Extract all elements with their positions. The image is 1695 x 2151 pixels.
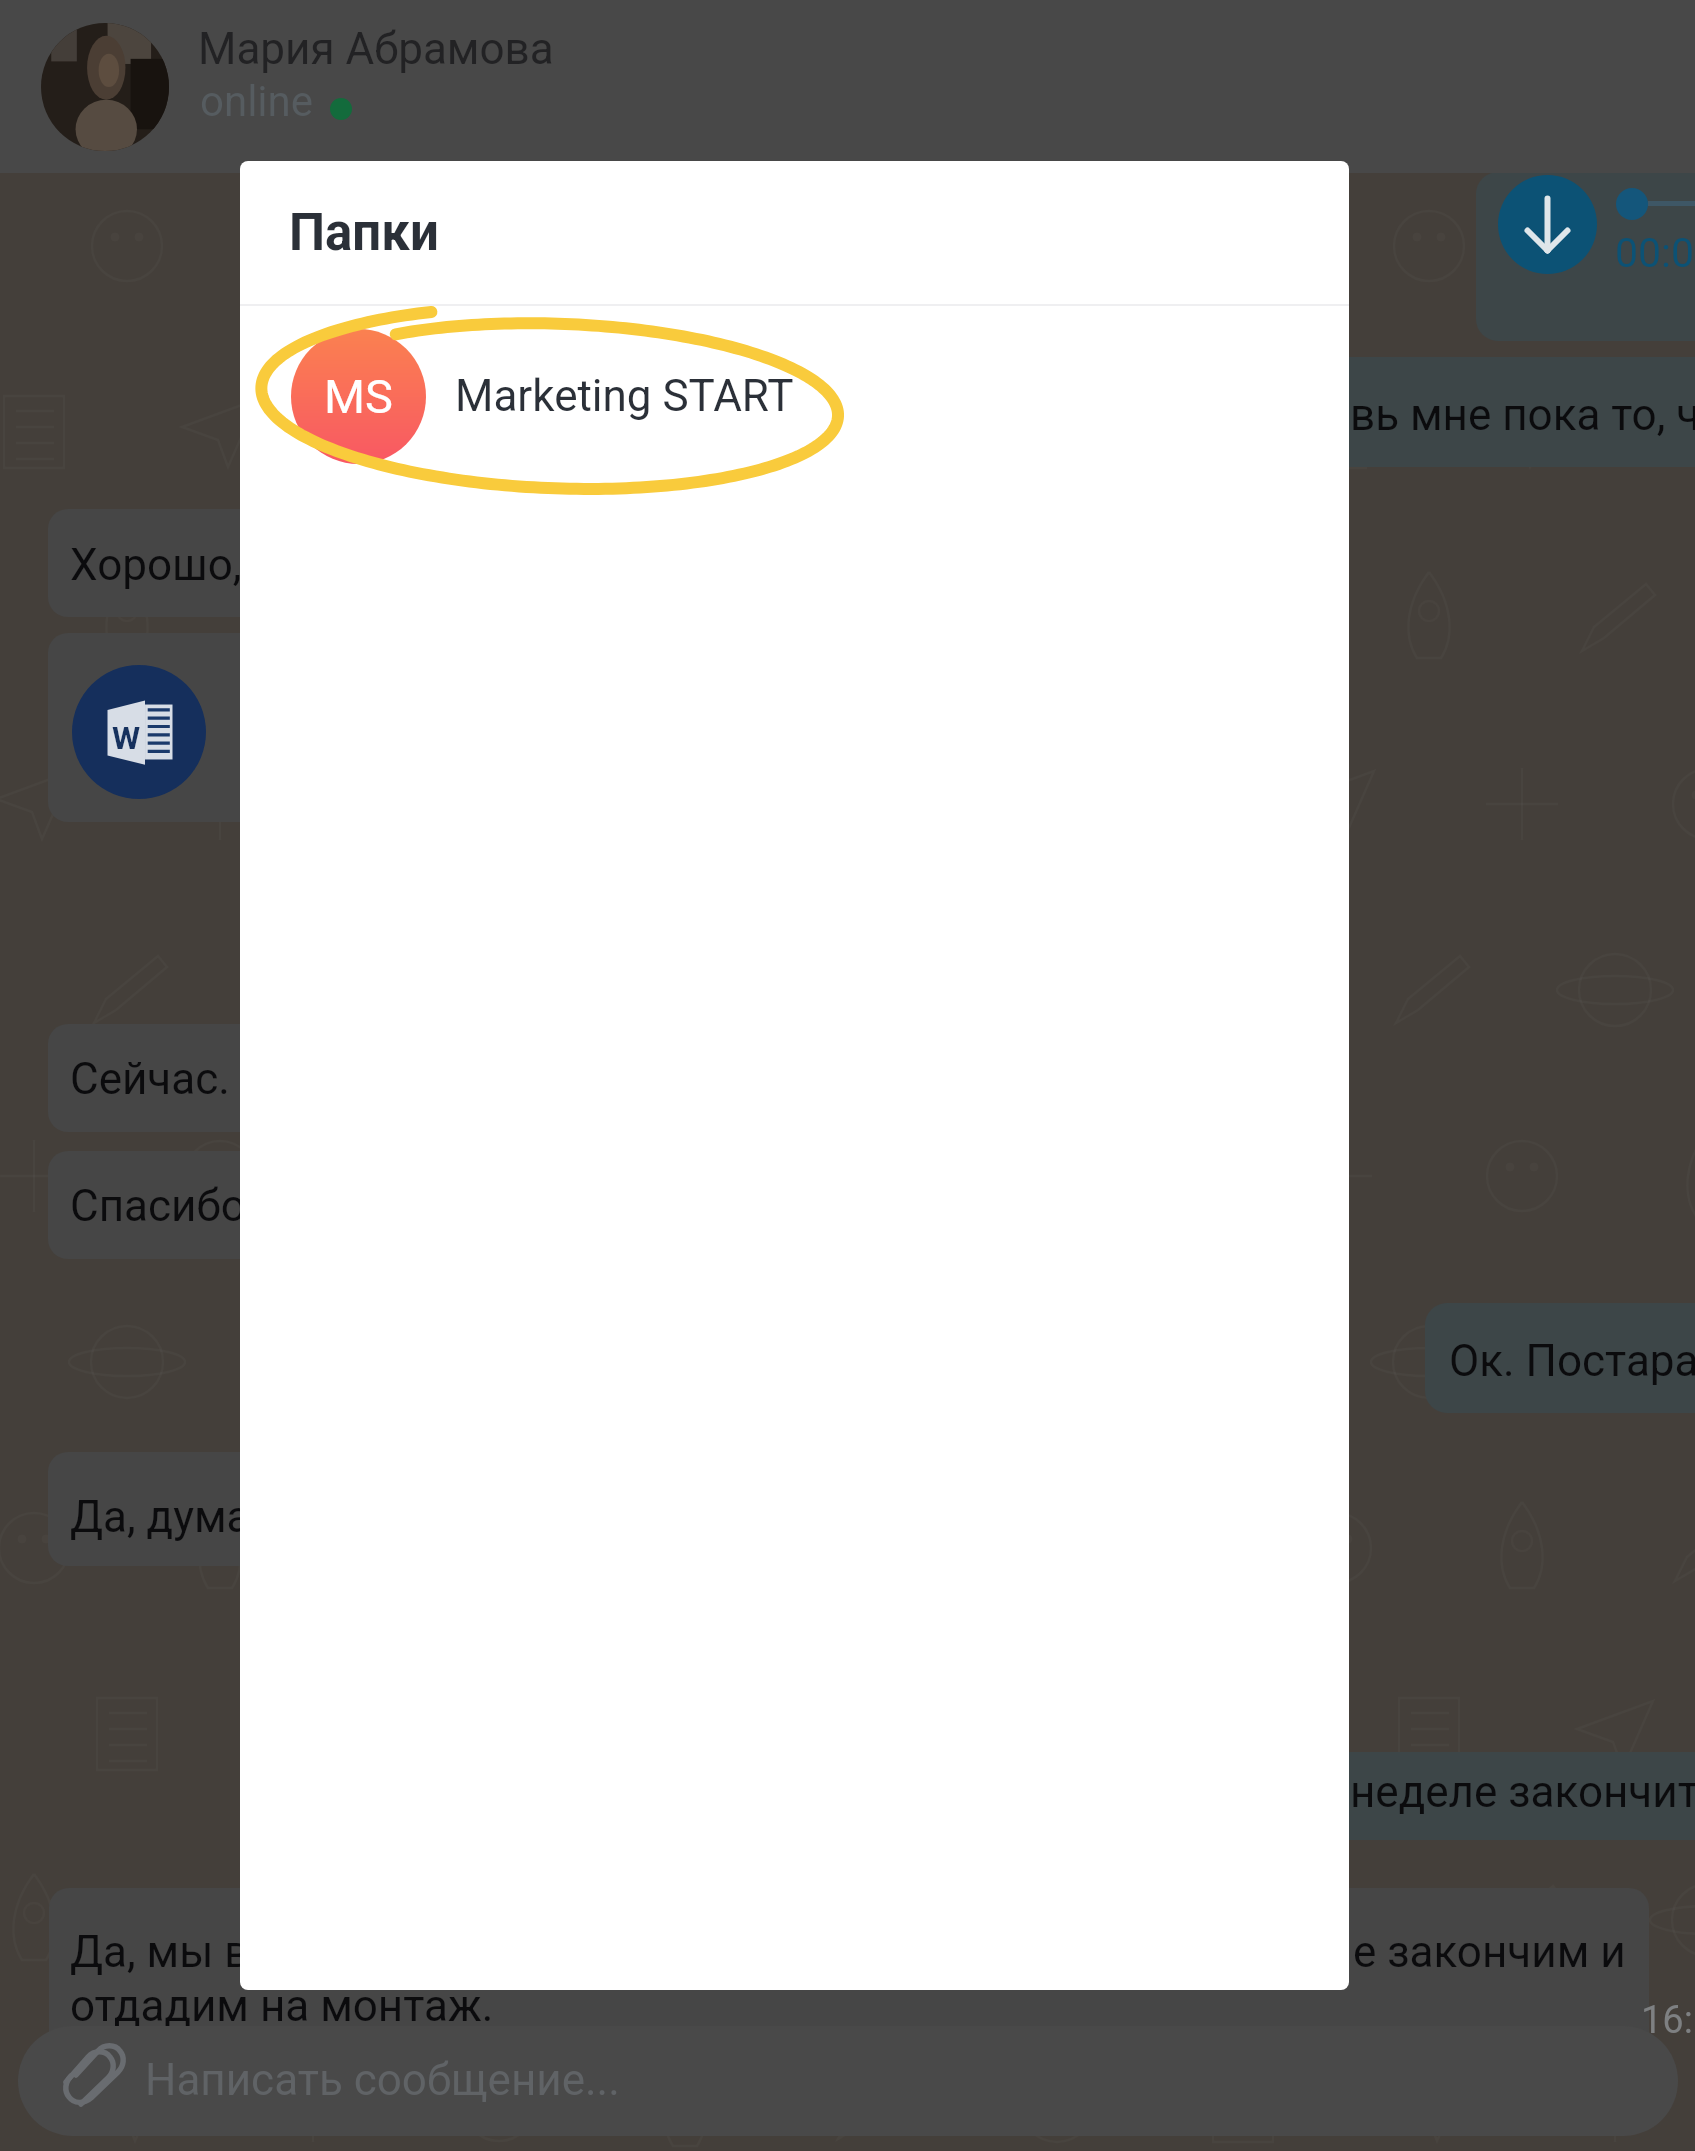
staticText: 16:1 — [1641, 1998, 1695, 2043]
staticText: отдадим на монтаж. — [70, 1980, 494, 2032]
button[interactable]: MS — [240, 316, 1349, 476]
staticText: 00:00 — [1615, 229, 1695, 277]
staticText: Ок. Постара — [1449, 1335, 1695, 1387]
button[interactable]: Profile photo — [41, 23, 169, 151]
staticText: MS — [324, 369, 393, 424]
staticText: е закончим и — [1353, 1926, 1626, 1978]
staticText: Да, мы в — [70, 1926, 250, 1978]
button[interactable] — [18, 2026, 1678, 2136]
staticText: Да, дума — [70, 1491, 251, 1543]
staticText: online — [200, 77, 314, 126]
staticText: Спасибо — [70, 1180, 246, 1232]
staticText: Написать сообщение... — [145, 2054, 620, 2106]
staticText: неделе закончит ч — [1350, 1766, 1695, 1818]
staticText: Marketing START — [455, 370, 794, 422]
staticText: Папки — [289, 203, 439, 263]
staticText: Хорошо, — [70, 539, 242, 591]
staticText: вь мне пока то, чт — [1350, 389, 1695, 441]
staticText: Сейчас. — [70, 1053, 230, 1105]
button[interactable]: Attach file — [57, 2046, 115, 2104]
button[interactable]: Word document attachment — [72, 665, 206, 799]
button[interactable]: Download voice message — [1498, 175, 1597, 274]
staticText: Мария Абрамова — [198, 23, 554, 75]
staticText: W — [112, 719, 141, 757]
